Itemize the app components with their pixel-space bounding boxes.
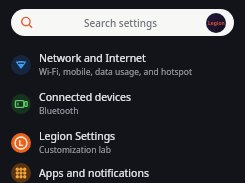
button[interactable]: Legion Settings <box>0 123 245 162</box>
button[interactable]: Apps and notifications <box>0 162 245 183</box>
staticText: Legion <box>208 20 225 27</box>
staticText: Legion Settings <box>39 129 116 143</box>
staticText: Bluetooth <box>39 105 79 117</box>
button[interactable]: Search <box>11 9 234 36</box>
staticText: Network and Internet <box>39 51 146 65</box>
button[interactable]: Connected devices <box>0 84 245 123</box>
staticText: Connected devices <box>39 90 132 104</box>
staticText: Wi-Fi, mobile, data usage, and hotspot <box>39 66 192 78</box>
button[interactable]: Network and Internet <box>0 45 245 84</box>
other: Search <box>19 15 35 31</box>
staticText: Search settings <box>84 16 158 30</box>
staticText: Apps and notifications <box>39 166 149 180</box>
button[interactable]: Account <box>206 13 226 33</box>
staticText: Customization lab <box>39 144 111 156</box>
